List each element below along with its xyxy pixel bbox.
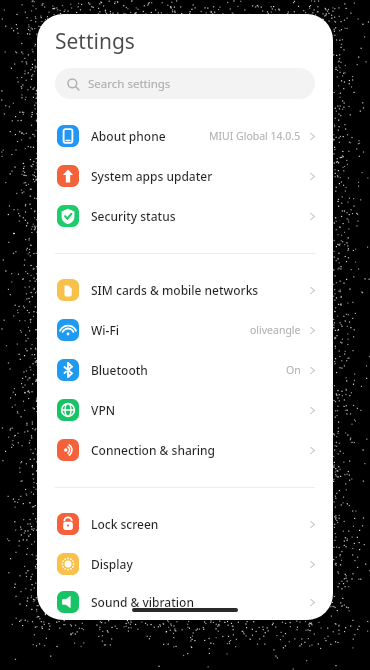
button[interactable]: Wi-Fi — [37, 310, 333, 350]
staticText: SIM cards & mobile networks — [91, 282, 307, 298]
staticText: Wi-Fi — [91, 322, 250, 338]
staticText: Settings — [55, 27, 135, 56]
staticText: Security status — [91, 208, 307, 224]
button[interactable]: About phone — [37, 116, 333, 156]
staticText: System apps updater — [91, 168, 307, 184]
button[interactable]: Display — [37, 544, 333, 584]
staticText: MIUI Global 14.0.5 — [209, 129, 301, 143]
staticText: oliveangle — [250, 323, 301, 337]
staticText: Search settings — [88, 76, 171, 92]
button[interactable]: Connection & sharing — [37, 430, 333, 470]
button[interactable]: VPN — [37, 390, 333, 430]
button[interactable]: Bluetooth — [37, 350, 333, 390]
staticText: Lock screen — [91, 516, 307, 532]
staticText: Bluetooth — [91, 362, 286, 378]
staticText: Sound & vibration — [91, 594, 307, 610]
button[interactable]: System apps updater — [37, 156, 333, 196]
staticText: About phone — [91, 128, 209, 144]
staticText: Display — [91, 556, 307, 572]
button[interactable]: Sound & vibration — [37, 584, 333, 620]
button[interactable]: SIM cards & mobile networks — [37, 270, 333, 310]
button[interactable]: Lock screen — [37, 504, 333, 544]
button[interactable]: Security status — [37, 196, 333, 236]
staticText: On — [286, 363, 301, 377]
button[interactable]: Search settings — [55, 68, 315, 99]
staticText: VPN — [91, 402, 307, 418]
staticText: Connection & sharing — [91, 442, 307, 458]
